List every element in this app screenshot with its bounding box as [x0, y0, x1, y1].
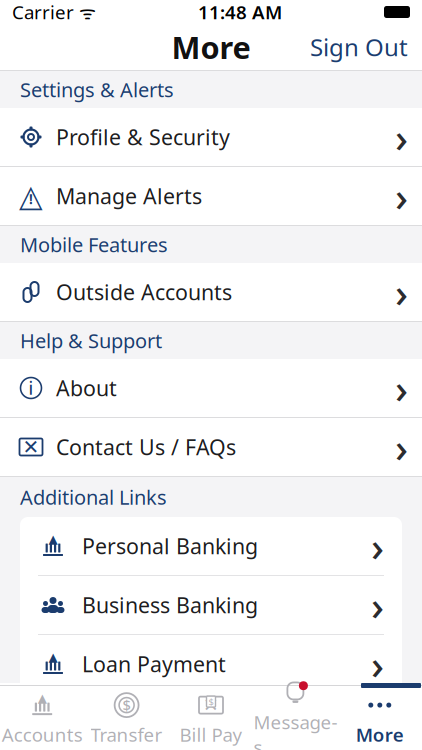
staticText: More [356, 722, 404, 747]
staticText: ✕ [22, 436, 39, 458]
button[interactable]: ▲ [20, 635, 402, 693]
button[interactable]: Business Banking [20, 576, 402, 635]
staticText: More [171, 27, 250, 67]
staticText: ᯤ [74, 0, 96, 24]
staticText: Business Banking [82, 591, 258, 619]
staticText: Settings & Alerts [20, 76, 174, 103]
staticText: Help & Support [20, 327, 162, 354]
staticText: Personal Banking [82, 532, 258, 560]
staticText: Messages [253, 710, 337, 750]
staticText: $ [123, 695, 131, 715]
staticText: Profile & Security [56, 123, 230, 151]
button[interactable]: ▲ [20, 517, 402, 576]
staticText: About [56, 374, 117, 402]
staticText: $ [208, 695, 213, 708]
staticText: › [371, 637, 384, 690]
staticText: Outside Accounts [56, 278, 232, 306]
staticText: › [395, 420, 408, 473]
staticText: Accounts [2, 722, 83, 747]
staticText: ✕ [203, 694, 219, 716]
staticText: 11:48 AM [198, 0, 282, 24]
button[interactable]: ▲ [0, 688, 84, 750]
button[interactable]: Outside Accounts [0, 263, 422, 322]
staticText: › [395, 110, 408, 163]
staticText: Manage Alerts [56, 182, 202, 210]
staticText: i [28, 376, 33, 399]
staticText: › [395, 361, 408, 414]
button[interactable]: Profile & Security [0, 108, 422, 167]
staticText: Bill Pay [179, 722, 242, 747]
staticText: Contact Us / FAQs [56, 433, 236, 461]
staticText: Transfer [91, 722, 163, 747]
staticText: Loan Payment [82, 650, 226, 678]
staticText: ▲ [48, 532, 57, 546]
staticText: Mobile Features [20, 231, 168, 258]
button[interactable]: More [338, 688, 422, 750]
staticText: △ [19, 179, 43, 213]
staticText: › [395, 265, 408, 318]
staticText: › [371, 578, 384, 631]
staticText: ▲ [38, 691, 47, 705]
button[interactable]: Messages [253, 688, 338, 750]
staticText: Carrier [12, 0, 74, 24]
button[interactable]: ✕ [169, 688, 253, 750]
button[interactable]: Sign Out [296, 23, 422, 71]
button[interactable]: i [0, 359, 422, 418]
staticText: Additional Links [20, 484, 167, 510]
staticText: › [395, 169, 408, 222]
button[interactable]: $ [84, 688, 169, 750]
staticText: ! [29, 190, 33, 208]
staticText: › [371, 519, 384, 572]
staticText: Sign Out [310, 31, 408, 63]
button[interactable]: △ [0, 167, 422, 226]
button[interactable]: ✕ [0, 418, 422, 477]
staticText: ▲ [48, 650, 57, 664]
